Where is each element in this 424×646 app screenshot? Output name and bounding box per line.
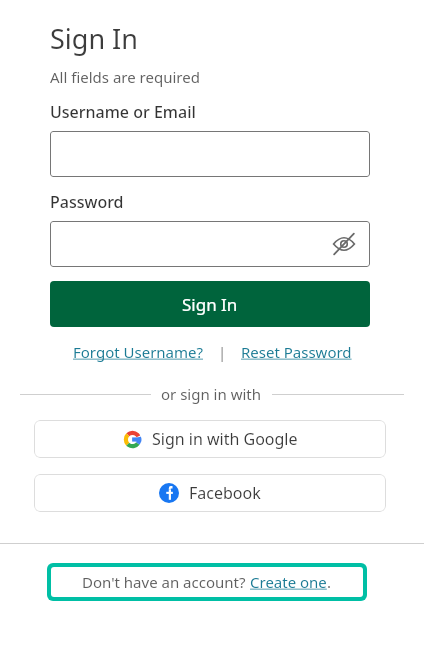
- staticText: Reset Password: [241, 342, 352, 362]
- button[interactable]: Sign in with Google: [34, 420, 386, 458]
- button[interactable]: Show password: [328, 228, 360, 260]
- staticText: Username or Email: [50, 101, 196, 123]
- staticText: |: [218, 342, 227, 362]
- button[interactable]: [50, 131, 370, 177]
- staticText: Sign in with Google: [152, 428, 298, 450]
- staticText: All fields are required: [50, 67, 200, 87]
- button[interactable]: Don't have an account?: [51, 567, 363, 597]
- button[interactable]: Forgot Username?: [73, 342, 204, 362]
- button[interactable]: Sign In: [50, 281, 370, 327]
- staticText: Facebook: [189, 482, 261, 504]
- staticText: Password: [50, 191, 124, 213]
- staticText: Create one: [250, 572, 327, 592]
- button[interactable]: Facebook: [34, 474, 386, 512]
- staticText: Forgot Username?: [73, 342, 204, 362]
- staticText: Don't have an account?: [82, 572, 250, 592]
- staticText: Sign In: [50, 20, 138, 57]
- button[interactable]: Show password: [50, 221, 370, 267]
- staticText: .: [327, 572, 332, 592]
- staticText: or sign in with: [161, 384, 262, 404]
- button[interactable]: Reset Password: [241, 342, 352, 362]
- staticText: Sign In: [182, 293, 238, 316]
